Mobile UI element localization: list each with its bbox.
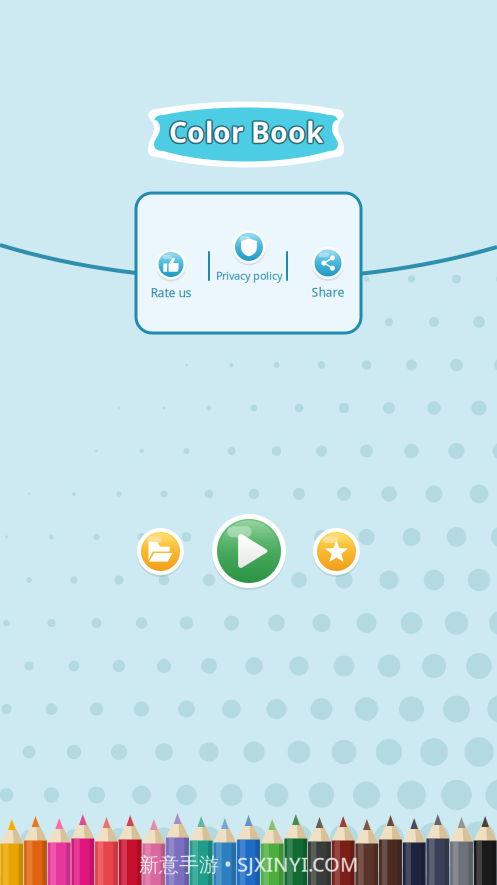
- staticText: Color Book: [168, 113, 322, 151]
- staticText: Color Book: [169, 115, 323, 152]
- staticText: Share: [311, 284, 344, 300]
- staticText: Color Book: [168, 114, 322, 152]
- staticText: Color Book: [169, 112, 323, 149]
- staticText: Color Book: [170, 112, 324, 150]
- button[interactable]: Open drawing: [137, 528, 184, 575]
- staticText: 新意手游 • SJXINYI.COM: [139, 851, 358, 877]
- button[interactable]: Favourites: [313, 528, 360, 575]
- button[interactable]: Play: [212, 514, 286, 588]
- staticText: Color Book: [169, 113, 323, 151]
- staticText: Color Book: [170, 113, 324, 151]
- button[interactable]: Privacy policy: [206, 229, 292, 284]
- button[interactable]: Rate us: [133, 249, 209, 301]
- button[interactable]: Share: [296, 247, 360, 300]
- staticText: Privacy policy: [216, 268, 282, 283]
- staticText: Rate us: [150, 284, 191, 300]
- staticText: Color Book: [170, 114, 324, 152]
- staticText: Color Book: [168, 112, 322, 150]
